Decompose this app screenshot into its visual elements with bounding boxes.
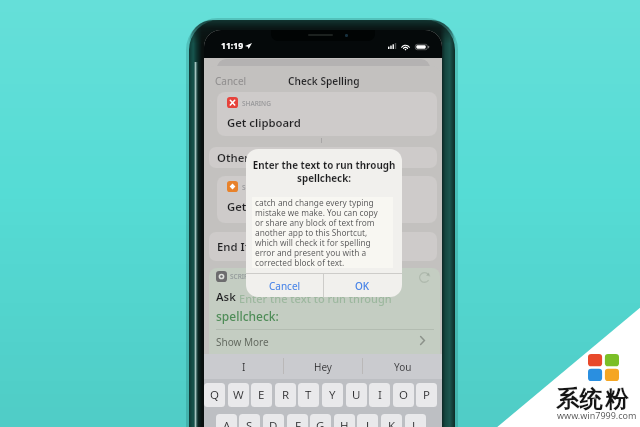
button[interactable]: Otherwise bbox=[209, 147, 437, 168]
staticText: I bbox=[378, 387, 382, 403]
button[interactable]: I bbox=[369, 383, 390, 407]
button[interactable]: You bbox=[363, 354, 442, 379]
staticText: spellcheck: bbox=[216, 308, 279, 324]
button[interactable]: SCRIPTING bbox=[217, 176, 437, 223]
staticText: D bbox=[269, 418, 278, 427]
button[interactable]: D bbox=[263, 414, 284, 427]
button[interactable]: Hey bbox=[284, 354, 362, 379]
other: Location bbox=[245, 43, 252, 49]
staticText: 11:19 bbox=[221, 40, 244, 52]
staticText: Get clipboard bbox=[227, 115, 301, 130]
staticText: End If bbox=[217, 239, 249, 254]
button[interactable]: Q bbox=[204, 383, 225, 407]
staticText: Hey bbox=[314, 360, 332, 374]
other: Run bbox=[417, 270, 432, 285]
button[interactable]: I bbox=[204, 354, 283, 379]
button[interactable]: Check Spelling bbox=[204, 66, 442, 94]
button[interactable]: Cancel bbox=[210, 71, 254, 91]
button[interactable]: catch and change every typing mistake we… bbox=[252, 197, 393, 268]
button[interactable]: F bbox=[287, 414, 308, 427]
button[interactable]: R bbox=[275, 383, 296, 407]
button[interactable]: E bbox=[251, 383, 272, 407]
other: Show More bbox=[420, 336, 425, 345]
staticText: F bbox=[295, 418, 301, 427]
button[interactable]: P bbox=[416, 383, 437, 407]
button[interactable]: H bbox=[334, 414, 355, 427]
button[interactable]: End If bbox=[209, 232, 437, 261]
button[interactable]: S bbox=[239, 414, 260, 427]
staticText: SCRIPTING bbox=[242, 183, 276, 192]
staticText: OK bbox=[355, 279, 370, 293]
staticText: You bbox=[394, 360, 412, 374]
staticText: Y bbox=[329, 387, 336, 403]
staticText: H bbox=[340, 418, 349, 427]
button[interactable]: Y bbox=[322, 383, 343, 407]
button[interactable]: G bbox=[310, 414, 331, 427]
staticText: I bbox=[242, 360, 246, 374]
staticText: catch and change every typing mistake we… bbox=[255, 197, 385, 268]
staticText: 系统 bbox=[556, 385, 602, 414]
staticText: Enter the text to run through bbox=[239, 291, 392, 306]
staticText: Enter the text to run through spellcheck… bbox=[252, 159, 396, 185]
staticText: T bbox=[305, 387, 312, 403]
button[interactable]: T bbox=[298, 383, 319, 407]
button[interactable]: J bbox=[357, 414, 378, 427]
staticText: O bbox=[399, 387, 408, 403]
button[interactable]: Cancel bbox=[246, 274, 323, 297]
button[interactable]: W bbox=[228, 383, 249, 407]
staticText: A bbox=[223, 418, 231, 427]
staticText: E bbox=[258, 387, 265, 403]
button[interactable]: A bbox=[216, 414, 237, 427]
staticText: G bbox=[316, 418, 325, 427]
staticText: W bbox=[233, 387, 244, 403]
staticText: Otherwise bbox=[217, 150, 274, 165]
button[interactable]: L bbox=[405, 414, 426, 427]
staticText: Cancel bbox=[269, 279, 301, 293]
staticText: www.win7999.com bbox=[557, 409, 637, 421]
button[interactable]: SHARING bbox=[217, 92, 437, 136]
staticText: Ask bbox=[216, 289, 236, 304]
staticText: U bbox=[352, 387, 361, 403]
staticText: L bbox=[412, 418, 419, 427]
staticText: SCRIPTING bbox=[230, 272, 264, 281]
staticText: J bbox=[366, 418, 370, 427]
button[interactable]: O bbox=[393, 383, 414, 407]
staticText: SHARING bbox=[242, 99, 271, 108]
staticText: R bbox=[282, 387, 290, 403]
staticText: Q bbox=[210, 387, 219, 403]
button[interactable]: SCRIPTING bbox=[209, 268, 440, 370]
staticText: Cancel bbox=[215, 74, 247, 88]
staticText: Get bbox=[227, 199, 247, 214]
staticText: K bbox=[388, 418, 396, 427]
staticText: P bbox=[423, 387, 430, 403]
button[interactable]: U bbox=[346, 383, 367, 407]
staticText: 粉 bbox=[605, 385, 628, 414]
button[interactable]: OK bbox=[324, 274, 401, 297]
staticText: Show More bbox=[216, 335, 269, 349]
staticText: S bbox=[246, 418, 253, 427]
staticText: Check Spelling bbox=[288, 74, 360, 88]
button[interactable]: K bbox=[381, 414, 402, 427]
